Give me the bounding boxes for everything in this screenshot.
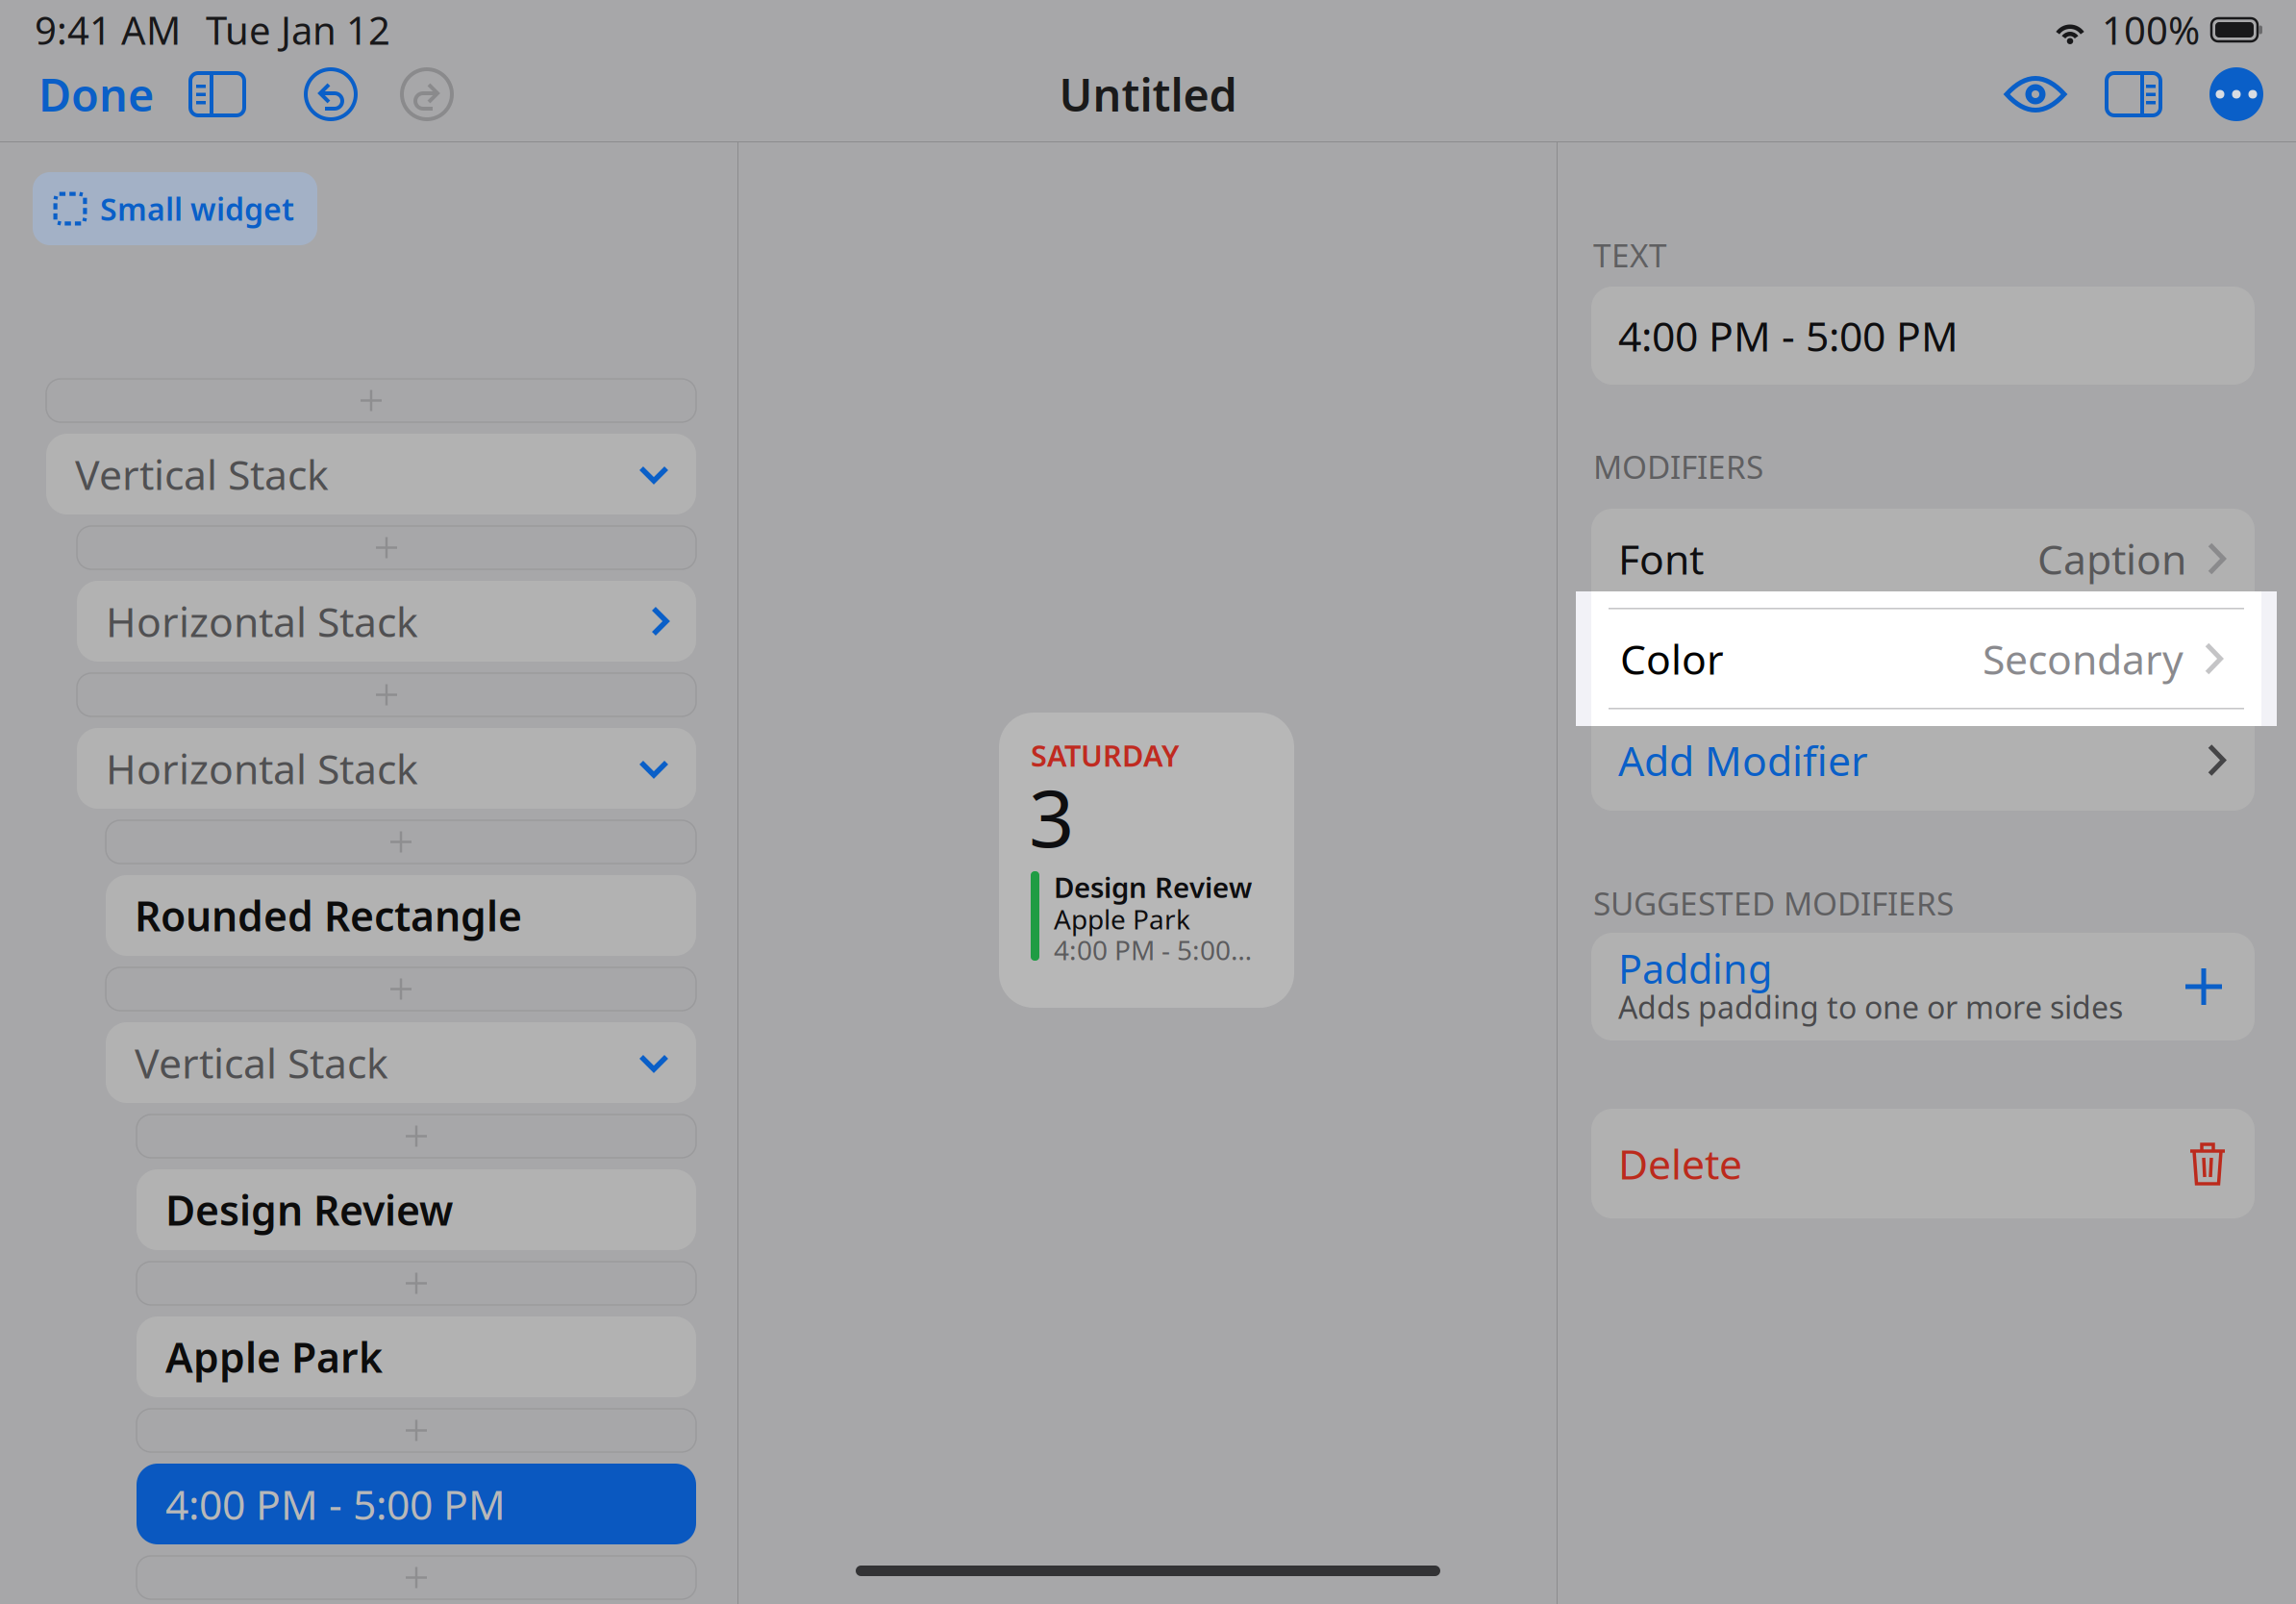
button[interactable]: Hide sidebar (171, 48, 263, 140)
button[interactable]: Add Modifier (1591, 710, 2255, 811)
staticText: 4:00 PM - 5:00 PM (165, 1477, 506, 1531)
staticText: TEXT (1593, 234, 1667, 276)
button[interactable]: Rounded Rectangle (106, 875, 696, 956)
staticText: Design Review (165, 1183, 453, 1237)
button[interactable]: Redo (381, 48, 473, 140)
staticText: Secondary (1983, 632, 2184, 686)
staticText: 4:00 PM - 5:00… (1054, 932, 1252, 968)
staticText: Adds padding to one or more sides (1618, 986, 2123, 1027)
staticText: Delete (1618, 1136, 1742, 1191)
button[interactable]: Delete (1591, 1109, 2255, 1218)
staticText: Tue Jan 12 (206, 4, 390, 55)
staticText: Untitled (1059, 64, 1237, 124)
button[interactable]: Vertical Stack (46, 434, 696, 514)
staticText: 9:41 AM (35, 4, 181, 55)
button[interactable]: 4:00 PM - 5:00 PM (137, 1464, 696, 1544)
button[interactable]: Hide inspector (2087, 48, 2180, 140)
staticText: Font (1618, 531, 1704, 586)
button[interactable]: Undo (285, 48, 377, 140)
button[interactable]: Padding (1591, 933, 2255, 1040)
button[interactable]: Horizontal Stack (77, 728, 696, 809)
staticText: Horizontal Stack (106, 741, 418, 796)
staticText: Done (38, 64, 154, 124)
staticText: Vertical Stack (135, 1035, 388, 1090)
button[interactable]: Small widget (33, 172, 317, 245)
staticText: SATURDAY (1031, 736, 1179, 775)
staticText: Horizontal Stack (106, 594, 418, 649)
button[interactable]: Color (1576, 591, 2277, 726)
staticText: Color (1620, 632, 1724, 686)
staticText: 4:00 PM - 5:00 PM (1618, 308, 1959, 363)
button[interactable]: Preview (1989, 48, 2082, 140)
button[interactable]: 4:00 PM - 5:00 PM (1591, 287, 2255, 385)
button[interactable]: More (2190, 48, 2283, 140)
staticText: Small widget (100, 188, 294, 229)
button[interactable]: Apple Park (137, 1316, 696, 1397)
staticText: Design Review (1054, 868, 1252, 906)
staticText: 3 (1029, 764, 1074, 869)
staticText: 100% (2102, 4, 2200, 55)
button[interactable]: Vertical Stack (106, 1022, 696, 1103)
staticText: SUGGESTED MODIFIERS (1593, 882, 1954, 924)
staticText: Add Modifier (1618, 733, 1868, 787)
button[interactable]: Design Review (137, 1169, 696, 1250)
button[interactable]: Horizontal Stack (77, 581, 696, 662)
staticText: Padding (1618, 942, 1772, 995)
staticText: Rounded Rectangle (135, 888, 522, 943)
staticText: Apple Park (165, 1330, 383, 1384)
button[interactable]: Font (1591, 509, 2255, 609)
staticText: Vertical Stack (75, 447, 329, 501)
staticText: Caption (2037, 531, 2186, 586)
staticText: MODIFIERS (1593, 445, 1763, 488)
button[interactable]: Done (0, 48, 173, 140)
staticText: Apple Park (1054, 901, 1190, 937)
